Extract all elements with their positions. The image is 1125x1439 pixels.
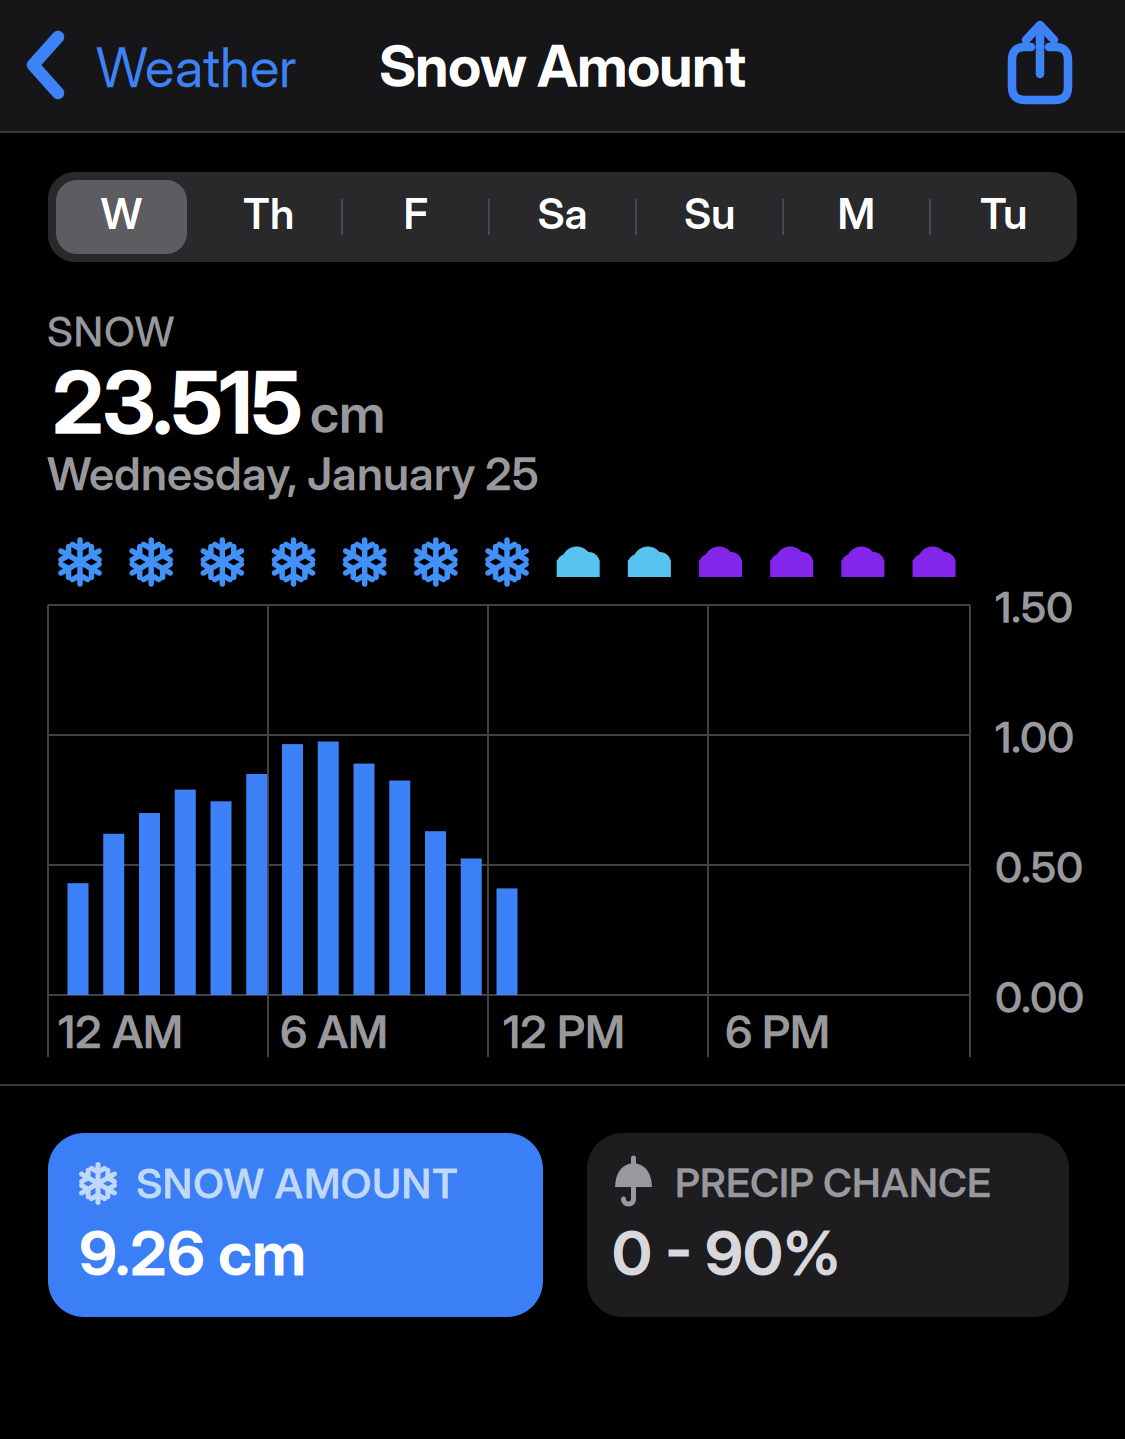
button[interactable]: W <box>48 172 195 262</box>
button[interactable]: M <box>783 172 930 262</box>
staticText: W <box>100 188 142 239</box>
staticText: F <box>403 188 427 239</box>
button[interactable]: Sa <box>489 172 636 262</box>
button[interactable]: PRECIP CHANCE <box>587 1133 1069 1317</box>
staticText: 0 - 90% <box>612 1217 841 1289</box>
button[interactable]: F <box>342 172 489 262</box>
staticText: 9.26 cm <box>79 1217 306 1289</box>
button[interactable]: Back <box>26 30 297 99</box>
button[interactable]: Share <box>1002 18 1078 114</box>
staticText: 1.50 <box>995 582 1073 632</box>
staticText: 0.50 <box>995 842 1083 892</box>
button[interactable]: Su <box>636 172 783 262</box>
button[interactable]: SNOW AMOUNT <box>48 1133 543 1317</box>
staticText: 12 PM <box>503 1005 625 1058</box>
button[interactable]: Th <box>195 172 342 262</box>
staticText: 6 PM <box>725 1005 830 1058</box>
staticText: PRECIP CHANCE <box>675 1159 991 1206</box>
staticText: 12 AM <box>58 1005 183 1058</box>
staticText: 0.00 <box>995 972 1084 1022</box>
button[interactable]: Tu <box>930 172 1077 262</box>
staticText: 23.515 <box>52 351 303 453</box>
staticText: cm <box>310 382 385 445</box>
staticText: M <box>837 188 875 239</box>
staticText: 6 AM <box>280 1005 388 1058</box>
staticText: Weather <box>96 35 297 99</box>
staticText: Wednesday, January 25 <box>47 447 539 500</box>
staticText: Tu <box>980 188 1027 239</box>
staticText: Su <box>684 188 735 239</box>
staticText: 1.00 <box>995 712 1074 762</box>
staticText: Sa <box>537 188 587 239</box>
staticText: Th <box>243 188 294 239</box>
staticText: SNOW <box>47 307 174 356</box>
staticText: SNOW AMOUNT <box>136 1159 458 1208</box>
staticText: Snow Amount <box>379 32 746 100</box>
